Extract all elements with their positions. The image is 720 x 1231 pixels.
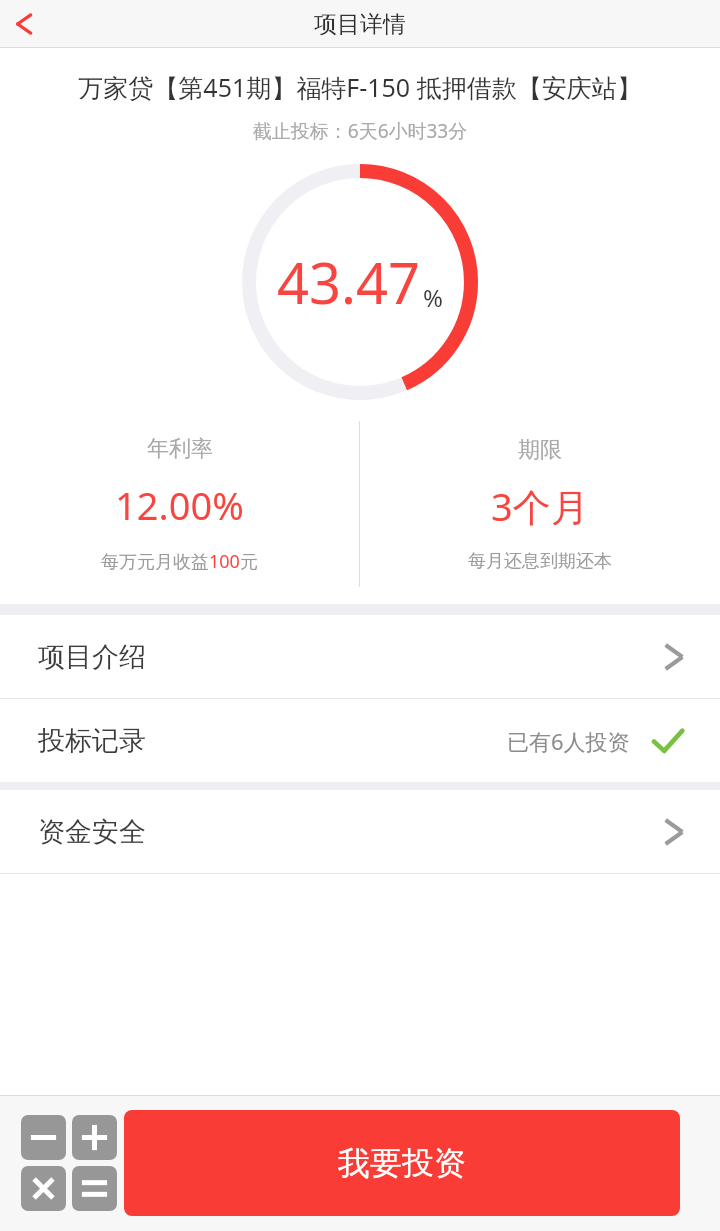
button[interactable]: 我要投资	[124, 1110, 680, 1216]
staticText: 12.00%	[115, 479, 244, 531]
button[interactable]: Calculator	[14, 1108, 124, 1218]
staticText: 项目详情	[314, 10, 406, 39]
staticText: 我要投资	[338, 1143, 466, 1183]
button[interactable]: 投标记录	[0, 699, 720, 782]
staticText: 每月还息到期还本	[468, 550, 612, 573]
staticText: 项目介绍	[38, 640, 146, 674]
staticText: 投标记录	[38, 724, 146, 758]
staticText: 资金安全	[38, 815, 146, 849]
staticText: 截止投标：6天6小时33分	[0, 118, 720, 144]
button[interactable]: Back	[0, 0, 48, 48]
staticText: 年利率	[147, 435, 213, 463]
button[interactable]: 项目介绍	[0, 615, 720, 698]
staticText: %	[423, 281, 443, 314]
button[interactable]: 资金安全	[0, 790, 720, 873]
staticText: 3个月	[491, 480, 589, 532]
staticText: 期限	[518, 436, 562, 464]
staticText: 万家贷【第451期】福特F-150 抵押借款【安庆站】	[8, 70, 712, 104]
staticText: 43.47	[277, 244, 421, 320]
staticText: 每万元月收益100元	[101, 549, 258, 574]
staticText: 已有6人投资	[507, 726, 630, 756]
